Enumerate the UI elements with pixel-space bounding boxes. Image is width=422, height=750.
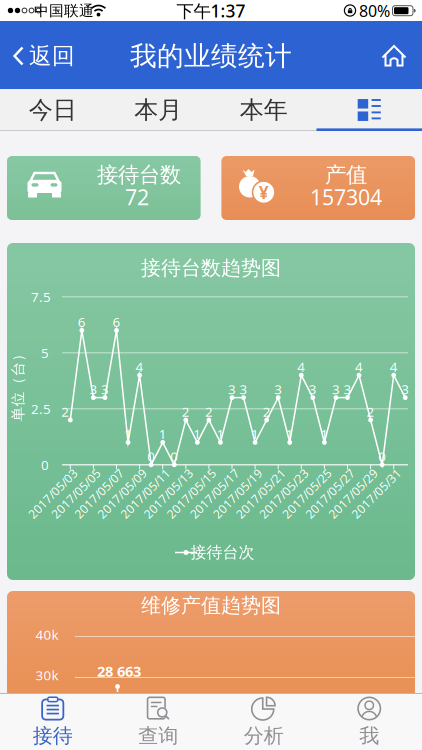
- staticText: 2017/05/05: [44, 485, 108, 501]
- staticText: 2017/05/03: [21, 485, 85, 501]
- staticText: 2: [61, 403, 69, 420]
- staticText: 今日: [29, 95, 77, 125]
- staticText: 4: [390, 358, 398, 375]
- staticText: 1: [216, 425, 224, 443]
- staticText: 维修产值趋势图: [141, 593, 281, 618]
- staticText: 3: [274, 380, 282, 398]
- staticText: 2017/05/25: [275, 485, 339, 501]
- staticText: 2: [182, 403, 190, 420]
- staticText: 0: [170, 447, 178, 465]
- staticText: 3: [101, 380, 109, 398]
- staticText: 本月: [134, 95, 182, 125]
- staticText: 1: [193, 425, 201, 443]
- staticText: 接待台数: [97, 162, 181, 188]
- staticText: 下午1:37: [176, 0, 245, 22]
- staticText: 40k: [35, 626, 58, 643]
- staticText: 2017/05/11: [113, 485, 177, 501]
- staticText: 2017/05/09: [90, 485, 154, 501]
- staticText: 接待: [33, 723, 73, 748]
- staticText: 查询: [138, 723, 178, 748]
- button[interactable]: 我: [317, 694, 422, 750]
- staticText: 2017/05/23: [252, 485, 316, 501]
- staticText: 3: [343, 380, 351, 398]
- button[interactable]: 返回: [6, 34, 82, 78]
- staticText: 1: [124, 425, 132, 443]
- button[interactable]: ¥: [221, 156, 415, 220]
- staticText: 中国联通: [34, 2, 94, 20]
- staticText: 分析: [244, 723, 284, 748]
- staticText: 2017/05/07: [67, 485, 131, 501]
- staticText: 2: [205, 403, 213, 420]
- staticText: 4: [136, 358, 144, 375]
- button[interactable]: 查询: [106, 694, 211, 750]
- staticText: 4: [297, 358, 305, 375]
- staticText: 6: [112, 313, 120, 331]
- staticText: 2.5: [31, 400, 51, 418]
- staticText: 2017/05/17: [182, 485, 246, 501]
- staticText: ¥: [259, 181, 269, 204]
- staticText: 157304: [310, 183, 382, 211]
- button[interactable]: 主页: [372, 34, 416, 78]
- staticText: 30k: [35, 666, 58, 684]
- staticText: 2017/05/19: [206, 485, 270, 501]
- staticText: 3: [228, 380, 236, 398]
- staticText: 28 663: [97, 661, 141, 681]
- button[interactable]: 接待: [0, 694, 105, 750]
- button[interactable]: 本年: [211, 89, 316, 131]
- staticText: 2: [367, 403, 375, 420]
- staticText: 3: [309, 380, 317, 398]
- staticText: 6: [78, 313, 86, 331]
- staticText: 3: [240, 380, 248, 398]
- staticText: 0: [147, 447, 155, 465]
- staticText: 2017/05/15: [159, 485, 223, 501]
- staticText: 1: [286, 425, 294, 443]
- staticText: 1: [320, 425, 328, 443]
- staticText: 3: [401, 380, 409, 398]
- button[interactable]: 本月: [106, 89, 211, 131]
- staticText: 返回: [29, 42, 75, 70]
- staticText: 2017/05/13: [136, 485, 200, 501]
- button[interactable]: 接待台数: [7, 156, 200, 220]
- staticText: 产值: [325, 162, 367, 188]
- staticText: 单位（台）: [0, 375, 55, 393]
- staticText: 我: [359, 723, 379, 748]
- staticText: 2017/05/27: [298, 485, 362, 501]
- staticText: 2: [263, 403, 271, 420]
- staticText: 1: [251, 425, 259, 443]
- staticText: 1: [159, 425, 167, 443]
- button[interactable]: 分析: [211, 694, 316, 750]
- staticText: 接待台数趋势图: [141, 256, 281, 280]
- staticText: 5: [41, 344, 49, 362]
- staticText: 2017/05/29: [321, 485, 385, 501]
- staticText: 我的业绩统计: [130, 40, 292, 72]
- staticText: 80%: [359, 0, 390, 21]
- staticText: 0: [378, 447, 386, 465]
- staticText: 2017/05/21: [229, 485, 293, 501]
- staticText: 3: [89, 380, 97, 398]
- staticText: 3: [332, 380, 340, 398]
- staticText: 本年: [240, 95, 288, 125]
- staticText: 2017/05/31: [344, 485, 408, 501]
- button[interactable]: 自定义: [317, 89, 422, 131]
- staticText: 0: [41, 456, 49, 474]
- staticText: 7.5: [31, 288, 51, 306]
- staticText: 接待台次: [190, 543, 254, 562]
- button[interactable]: 今日: [0, 89, 105, 131]
- staticText: 72: [125, 183, 149, 211]
- staticText: 4: [355, 358, 363, 375]
